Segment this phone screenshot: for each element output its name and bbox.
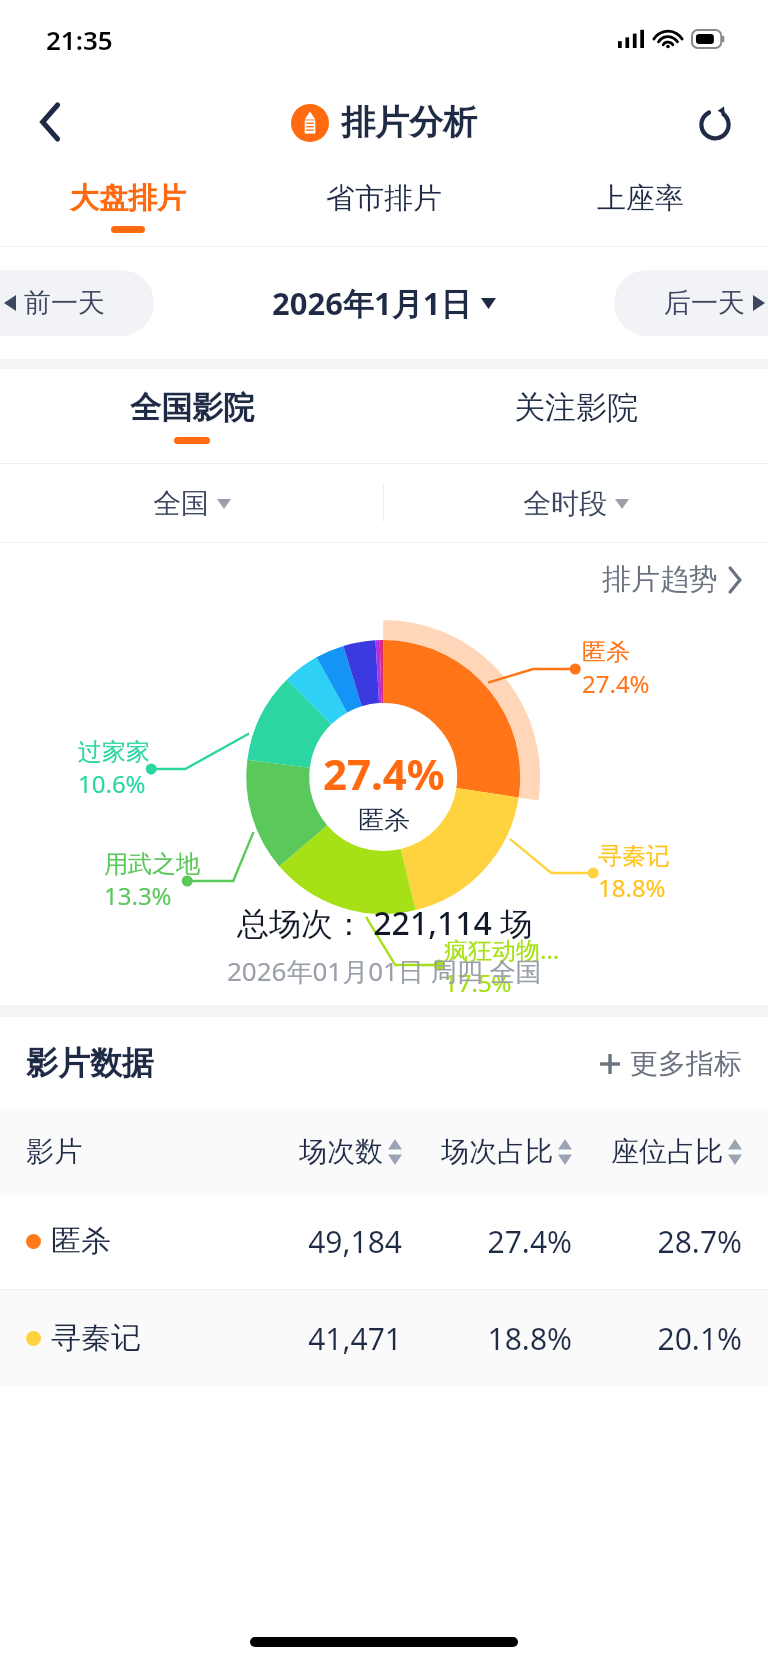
button[interactable]: 前一天	[0, 270, 154, 336]
staticText: 21:35	[46, 22, 113, 57]
staticText: 全时段	[523, 486, 607, 521]
staticText: 13.3%	[104, 879, 172, 912]
staticText: 用武之地	[104, 849, 200, 879]
staticText: 排片分析	[341, 101, 477, 144]
staticText: 座位占比	[611, 1134, 723, 1169]
staticText: 20.1%	[572, 1318, 742, 1359]
button[interactable]: 上座率	[512, 166, 768, 246]
staticText: 2026年1月1日	[272, 282, 472, 324]
staticText: 前一天	[24, 286, 105, 320]
staticText: 匿杀	[51, 1222, 111, 1260]
staticText: 49,184	[232, 1221, 402, 1262]
button[interactable]: 关注影院	[384, 369, 768, 463]
button[interactable]: 匿杀	[0, 1193, 768, 1289]
staticText: 全国	[153, 486, 209, 521]
button[interactable]: 场次数	[232, 1134, 402, 1169]
staticText: 27.4%	[582, 667, 650, 700]
button[interactable]: 更多指标	[600, 1046, 742, 1081]
staticText: 41,471	[232, 1318, 402, 1359]
button[interactable]: 省市排片	[256, 166, 512, 246]
button[interactable]: 全时段	[384, 464, 768, 542]
staticText: 匿杀	[358, 804, 410, 837]
staticText: 匿杀	[582, 637, 630, 667]
staticText: 28.7%	[572, 1221, 742, 1262]
staticText: 2026年01月01日 周四 全国	[227, 953, 542, 989]
button[interactable]: Back	[22, 93, 80, 151]
button[interactable]: 寻秦记	[0, 1290, 768, 1386]
staticText: 场次数	[299, 1134, 383, 1169]
staticText: 寻秦记	[51, 1319, 141, 1357]
staticText: 排片趋势	[602, 561, 718, 598]
button[interactable]: 后一天	[614, 270, 768, 336]
staticText: 17.5%	[444, 966, 512, 999]
button[interactable]: Share	[686, 93, 744, 151]
staticText: 过家家	[78, 737, 150, 767]
staticText: 关注影院	[514, 388, 638, 427]
staticText: 上座率	[597, 180, 684, 217]
staticText: 后一天	[664, 286, 745, 320]
staticText: 10.6%	[78, 767, 146, 800]
staticText: 大盘排片	[70, 180, 186, 217]
button[interactable]: 场次占比	[402, 1134, 572, 1169]
staticText: 27.4%	[402, 1221, 572, 1262]
staticText: 更多指标	[630, 1046, 742, 1081]
staticText: 27.4%	[323, 745, 445, 802]
staticText: 18.8%	[598, 871, 666, 904]
staticText: 总场次： 221,114 场	[237, 901, 533, 945]
staticText: 省市排片	[326, 180, 442, 217]
button[interactable]: 全国影院	[0, 369, 384, 463]
staticText: 疯狂动物...	[444, 933, 560, 966]
staticText: 全国影院	[130, 388, 254, 427]
button[interactable]: 座位占比	[572, 1134, 742, 1169]
staticText: 影片数据	[26, 1043, 154, 1083]
staticText: 18.8%	[402, 1318, 572, 1359]
staticText: 影片	[26, 1134, 232, 1169]
staticText: 场次占比	[441, 1134, 553, 1169]
button[interactable]: 2026年1月1日	[272, 282, 496, 324]
button[interactable]: 大盘排片	[0, 166, 256, 246]
button[interactable]: 排片趋势	[602, 561, 742, 598]
button[interactable]: 全国	[0, 464, 383, 542]
staticText: 寻秦记	[598, 841, 670, 871]
